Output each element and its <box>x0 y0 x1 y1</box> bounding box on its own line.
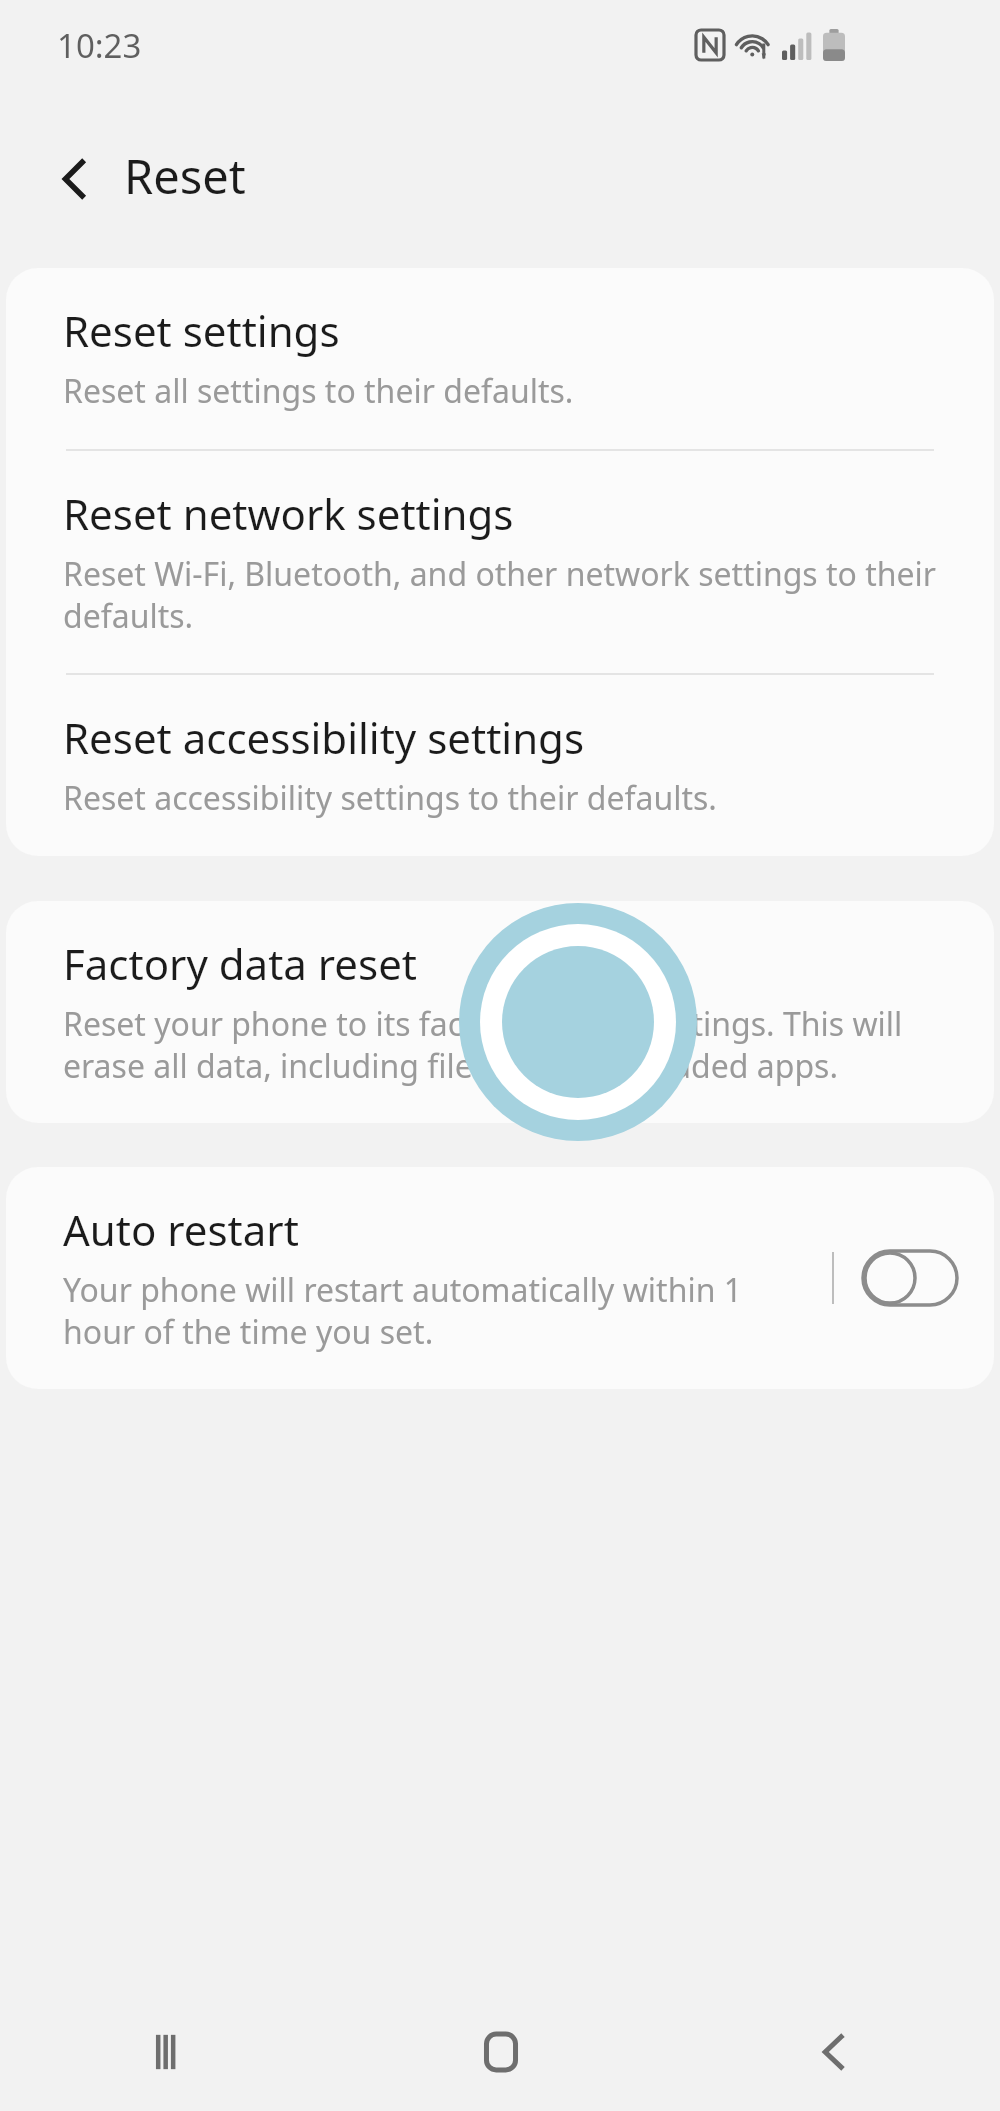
staticText: Reset accessibility settings to their de… <box>63 776 717 820</box>
staticText: Auto restart <box>63 1201 299 1258</box>
button[interactable]: Back <box>667 1993 1000 2111</box>
staticText: Reset all settings to their defaults. <box>63 369 574 413</box>
button[interactable]: Home <box>334 1993 667 2111</box>
staticText: Reset settings <box>63 302 340 359</box>
staticText: Reset <box>124 144 246 208</box>
staticText: Your phone will restart automatically wi… <box>63 1268 822 1353</box>
button[interactable]: Reset accessibility settings <box>6 675 994 856</box>
button[interactable]: Navigate up <box>34 138 116 220</box>
staticText: Reset accessibility settings <box>63 709 585 766</box>
button[interactable]: Reset settings <box>6 268 994 449</box>
button[interactable]: Recent apps <box>0 1993 334 2111</box>
staticText: Reset Wi-Fi, Bluetooth, and other networ… <box>63 552 946 637</box>
staticText: Reset your phone to its factory default … <box>63 1002 946 1087</box>
staticText: Factory data reset <box>63 935 417 992</box>
button[interactable]: Reset network settings <box>6 451 994 673</box>
button[interactable]: Factory data reset <box>6 901 994 1123</box>
button[interactable]: Auto restart <box>6 1167 994 1389</box>
staticText: 10:23 <box>57 23 142 68</box>
button[interactable]: Auto restart toggle, off <box>862 1250 958 1306</box>
staticText: Reset network settings <box>63 485 514 542</box>
